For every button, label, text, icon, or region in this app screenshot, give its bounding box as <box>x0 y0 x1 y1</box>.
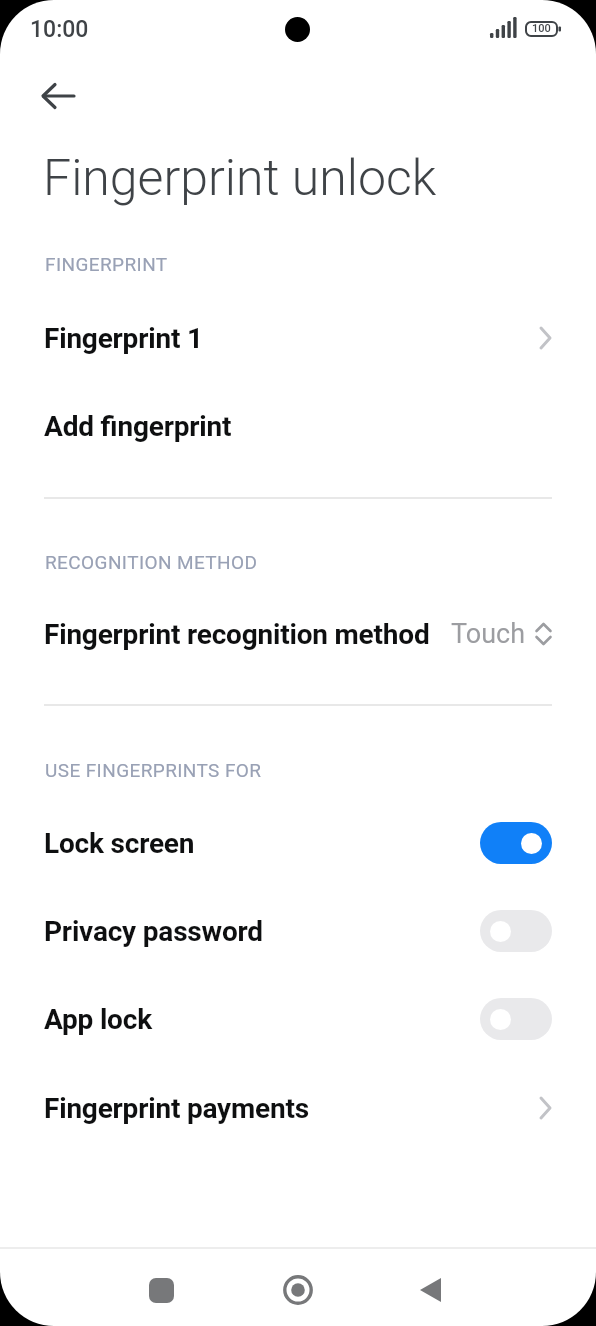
button[interactable] <box>480 910 552 952</box>
staticText: USE FINGERPRINTS FOR <box>45 759 262 781</box>
button[interactable] <box>405 1265 455 1315</box>
button[interactable] <box>480 822 552 864</box>
staticText: Fingerprint 1 <box>44 322 203 355</box>
staticText: Privacy password <box>44 915 263 948</box>
button[interactable]: Fingerprint recognition method <box>0 590 596 678</box>
staticText: Fingerprint payments <box>44 1092 309 1125</box>
staticText: FINGERPRINT <box>45 253 168 275</box>
staticText: Add fingerprint <box>44 410 232 443</box>
staticText: App lock <box>44 1003 152 1036</box>
staticText: 10:00 <box>30 16 89 43</box>
button[interactable]: App lock <box>0 975 596 1063</box>
button[interactable] <box>480 998 552 1040</box>
button[interactable]: Lock screen <box>0 799 596 887</box>
button[interactable] <box>273 1265 323 1315</box>
button[interactable] <box>32 72 84 120</box>
staticText: Lock screen <box>44 827 195 860</box>
staticText: RECOGNITION METHOD <box>45 551 258 573</box>
staticText: 100 <box>532 22 551 35</box>
staticText: Fingerprint recognition method <box>44 618 430 651</box>
button[interactable]: Privacy password <box>0 887 596 975</box>
button[interactable]: Fingerprint payments <box>0 1064 596 1152</box>
button[interactable]: Add fingerprint <box>0 382 596 470</box>
staticText: Fingerprint unlock <box>43 149 437 208</box>
staticText: Touch <box>451 618 526 650</box>
button[interactable] <box>136 1265 186 1315</box>
button[interactable]: Fingerprint 1 <box>0 294 596 382</box>
